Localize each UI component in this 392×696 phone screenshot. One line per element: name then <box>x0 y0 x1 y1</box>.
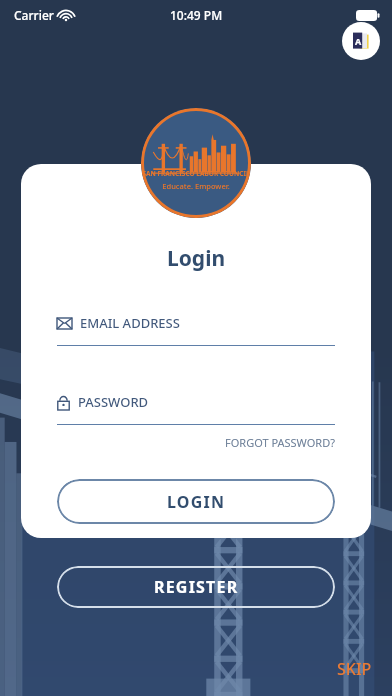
staticText: SKIP <box>337 658 372 680</box>
staticText: PASSWORD <box>78 393 149 411</box>
staticText: LOGIN <box>167 491 226 513</box>
staticText: REGISTER <box>154 576 239 598</box>
button[interactable]: REGISTER <box>57 566 335 608</box>
staticText: A <box>355 35 362 47</box>
button[interactable]: SKIP <box>331 652 378 686</box>
staticText: Educate. Empower. <box>162 181 230 191</box>
staticText: SAN FRANCISCO LABOR COUNCIL <box>142 169 250 178</box>
staticText: 10:49 PM <box>170 7 223 23</box>
button[interactable]: LOGIN <box>57 479 335 524</box>
staticText: Login <box>167 244 226 273</box>
button[interactable]: Accessibility <box>342 22 380 60</box>
button[interactable]: FORGOT PASSWORD? <box>225 433 335 452</box>
staticText: Carrier <box>14 7 54 23</box>
staticText: EMAIL ADDRESS <box>80 314 180 332</box>
